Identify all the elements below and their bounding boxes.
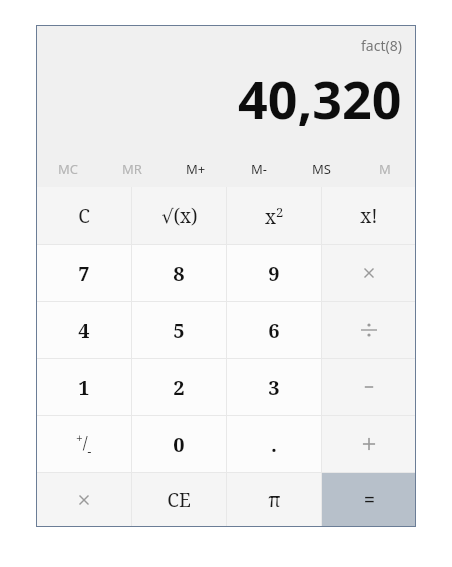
button[interactable]: MS (290, 151, 353, 187)
staticText: 3 (268, 374, 280, 401)
staticText: . (271, 431, 277, 458)
staticText: 4 (78, 317, 90, 344)
staticText: MS (312, 160, 331, 178)
staticText: 6 (268, 317, 280, 344)
staticText: = (364, 487, 375, 513)
button[interactable]: π (227, 473, 321, 527)
staticText: MC (58, 160, 79, 178)
staticText: 5 (173, 317, 185, 344)
staticText: √(x) (161, 203, 198, 229)
button[interactable]: M (353, 151, 416, 187)
button[interactable]: . (227, 416, 321, 472)
button[interactable]: Backspace (36, 473, 131, 527)
button[interactable]: Equals (322, 473, 416, 527)
staticText: 8 (173, 260, 185, 287)
staticText: +/- (76, 430, 92, 459)
button[interactable]: 7 (36, 245, 131, 301)
button[interactable]: C (36, 187, 131, 244)
staticText: M- (251, 160, 267, 178)
button[interactable]: CE (132, 473, 226, 527)
staticText: 2 (173, 374, 185, 401)
staticText: 9 (268, 260, 280, 287)
staticText: 7 (78, 260, 90, 287)
button[interactable]: Minus (322, 359, 416, 415)
button[interactable]: 8 (132, 245, 226, 301)
staticText: M (379, 160, 391, 178)
staticText: 1 (78, 374, 90, 401)
staticText: MR (122, 160, 142, 178)
staticText: x2 (265, 203, 284, 229)
staticText: 40,320 (238, 63, 402, 134)
staticText: π (268, 487, 281, 513)
button[interactable]: Divide (322, 302, 416, 358)
button[interactable]: 4 (36, 302, 131, 358)
staticText: 0 (173, 431, 185, 458)
button[interactable]: 3 (227, 359, 321, 415)
staticText: M+ (186, 160, 206, 178)
button[interactable]: 6 (227, 302, 321, 358)
button[interactable]: Plus minus sign (36, 416, 131, 472)
button[interactable]: 5 (132, 302, 226, 358)
staticText: fact(8) (361, 36, 402, 55)
staticText: CE (167, 487, 191, 513)
button[interactable]: MC (36, 151, 100, 187)
button[interactable]: M+ (164, 151, 227, 187)
button[interactable]: Multiply (322, 245, 416, 301)
button[interactable]: 9 (227, 245, 321, 301)
button[interactable]: 2 (132, 359, 226, 415)
button[interactable]: √(x) (132, 187, 226, 244)
button[interactable]: M- (227, 151, 290, 187)
staticText: C (78, 203, 90, 229)
button[interactable]: 1 (36, 359, 131, 415)
button[interactable]: 0 (132, 416, 226, 472)
button[interactable]: x! (322, 187, 416, 244)
button[interactable]: Plus (322, 416, 416, 472)
button[interactable]: x2 (227, 187, 321, 244)
button[interactable]: MR (100, 151, 164, 187)
staticText: x! (360, 203, 378, 229)
